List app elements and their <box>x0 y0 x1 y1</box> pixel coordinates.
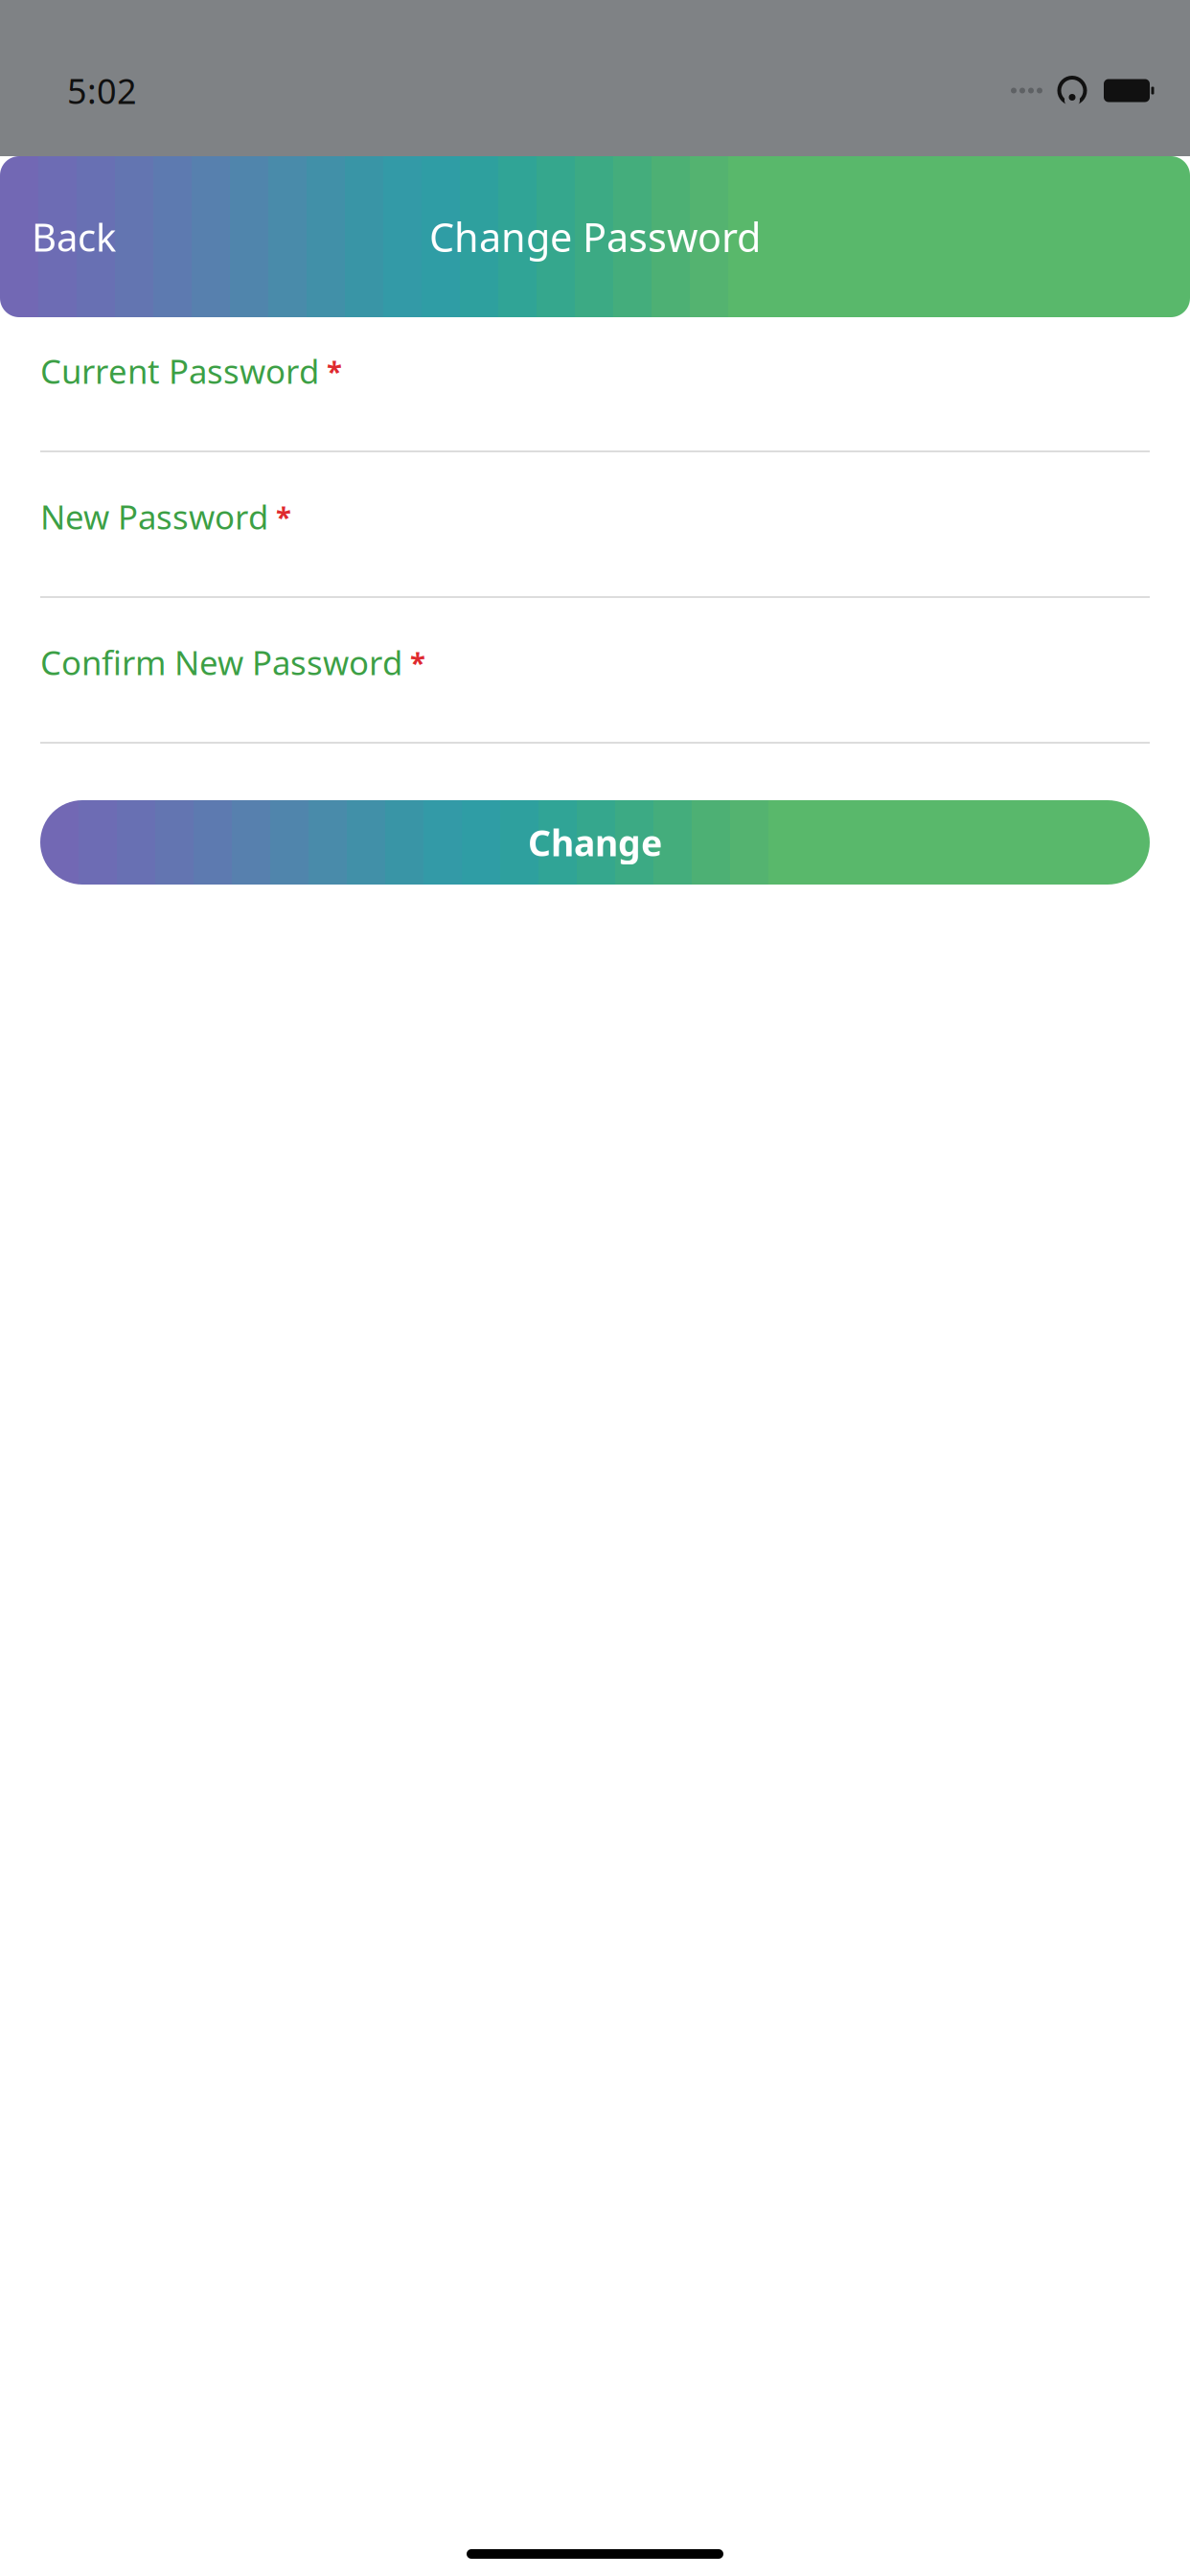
staticText: Change Password <box>429 210 761 263</box>
staticText: Back <box>32 211 116 262</box>
staticText: * <box>327 352 342 390</box>
staticText: 5:02 <box>67 68 137 113</box>
button[interactable]: Change <box>40 800 1150 885</box>
staticText: Confirm New Password <box>40 640 402 684</box>
button[interactable]: Back <box>0 198 135 276</box>
staticText: Current Password <box>40 349 319 393</box>
staticText: Change <box>528 819 662 866</box>
staticText: * <box>276 498 291 535</box>
staticText: New Password <box>40 494 268 539</box>
staticText: * <box>410 644 425 681</box>
